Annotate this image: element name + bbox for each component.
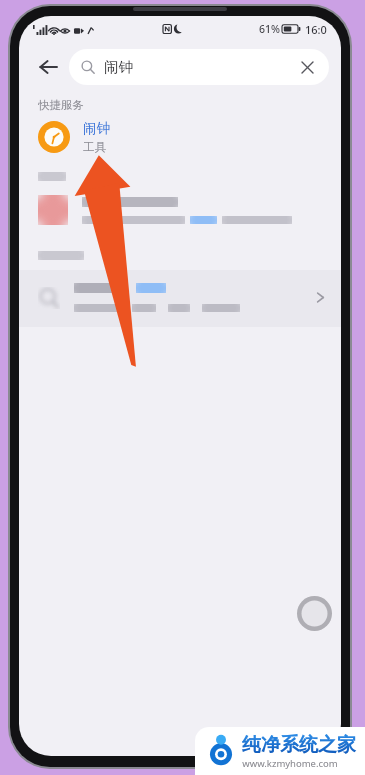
button[interactable]: Back [29,48,67,86]
button[interactable]: Assistive touch [297,596,332,631]
button[interactable]: 闹钟 [69,49,329,85]
staticText: 闹钟 [83,120,110,137]
button[interactable] [19,270,341,327]
button[interactable]: Clear [297,57,317,77]
staticText: 快捷服务 [38,98,84,112]
button[interactable] [19,191,341,229]
staticText: www.kzmyhome.com [242,757,338,770]
staticText: 闹钟 [104,58,133,76]
button[interactable]: 闹钟 [19,114,341,160]
staticText: 工具 [83,140,106,154]
staticText: 16:0 [305,22,327,37]
staticText: 61% [259,22,280,36]
staticText: 纯净系统之家 [242,733,356,757]
